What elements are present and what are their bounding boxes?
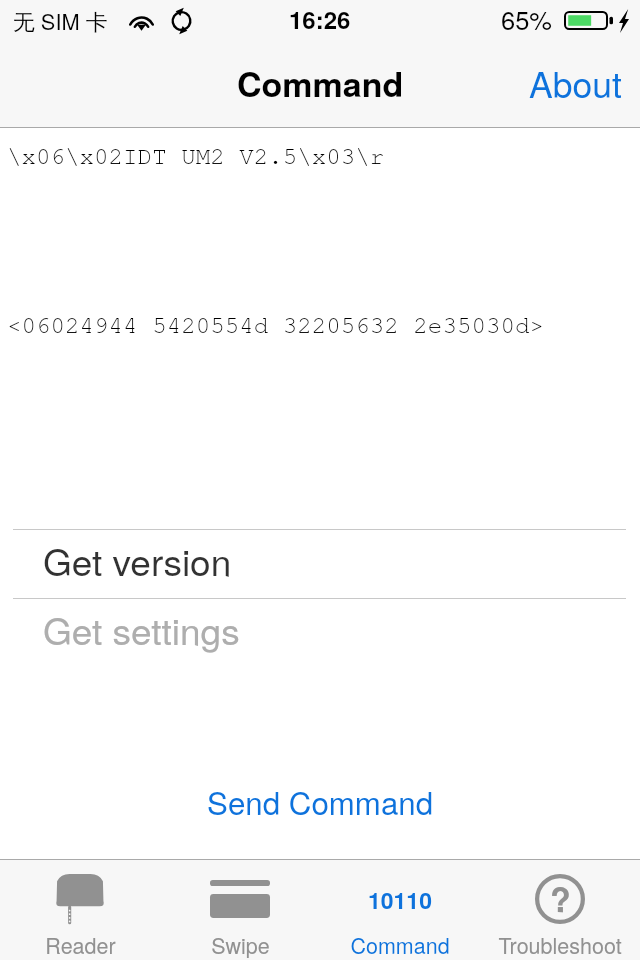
staticText: 16:26 xyxy=(289,2,351,36)
staticText: Troubleshoot xyxy=(498,929,622,960)
staticText: About xyxy=(529,57,622,108)
staticText: Get settings xyxy=(43,603,240,656)
staticText: \x06\x02IDT UM2 V2.5\x03\r xyxy=(7,141,385,170)
button[interactable]: Get settings xyxy=(0,599,640,667)
other: Command xyxy=(368,874,432,924)
staticText: 无 SIM 卡 xyxy=(13,5,108,36)
button[interactable]: Command xyxy=(320,860,480,960)
staticText: 65% xyxy=(501,1,553,38)
staticText: <06024944 5420554d 32205632 2e35030d> xyxy=(7,310,544,339)
button[interactable]: Reader xyxy=(0,860,160,960)
staticText: Swipe xyxy=(211,929,270,960)
staticText: Reader xyxy=(45,929,116,960)
button[interactable]: About xyxy=(511,45,640,124)
other: Troubleshoot xyxy=(535,874,585,924)
staticText: Command xyxy=(237,59,404,108)
staticText: Get version xyxy=(43,534,232,587)
button[interactable]: Send Command xyxy=(0,772,640,834)
other: Swipe xyxy=(210,874,270,924)
button[interactable]: Get version xyxy=(0,530,640,598)
staticText: Command xyxy=(350,929,450,960)
staticText: 10110 xyxy=(368,883,432,916)
button[interactable]: Swipe xyxy=(160,860,320,960)
button[interactable]: Troubleshoot xyxy=(480,860,640,960)
staticText: Send Command xyxy=(207,779,434,824)
staticText: ? xyxy=(550,874,571,923)
other: Reader xyxy=(55,874,105,924)
